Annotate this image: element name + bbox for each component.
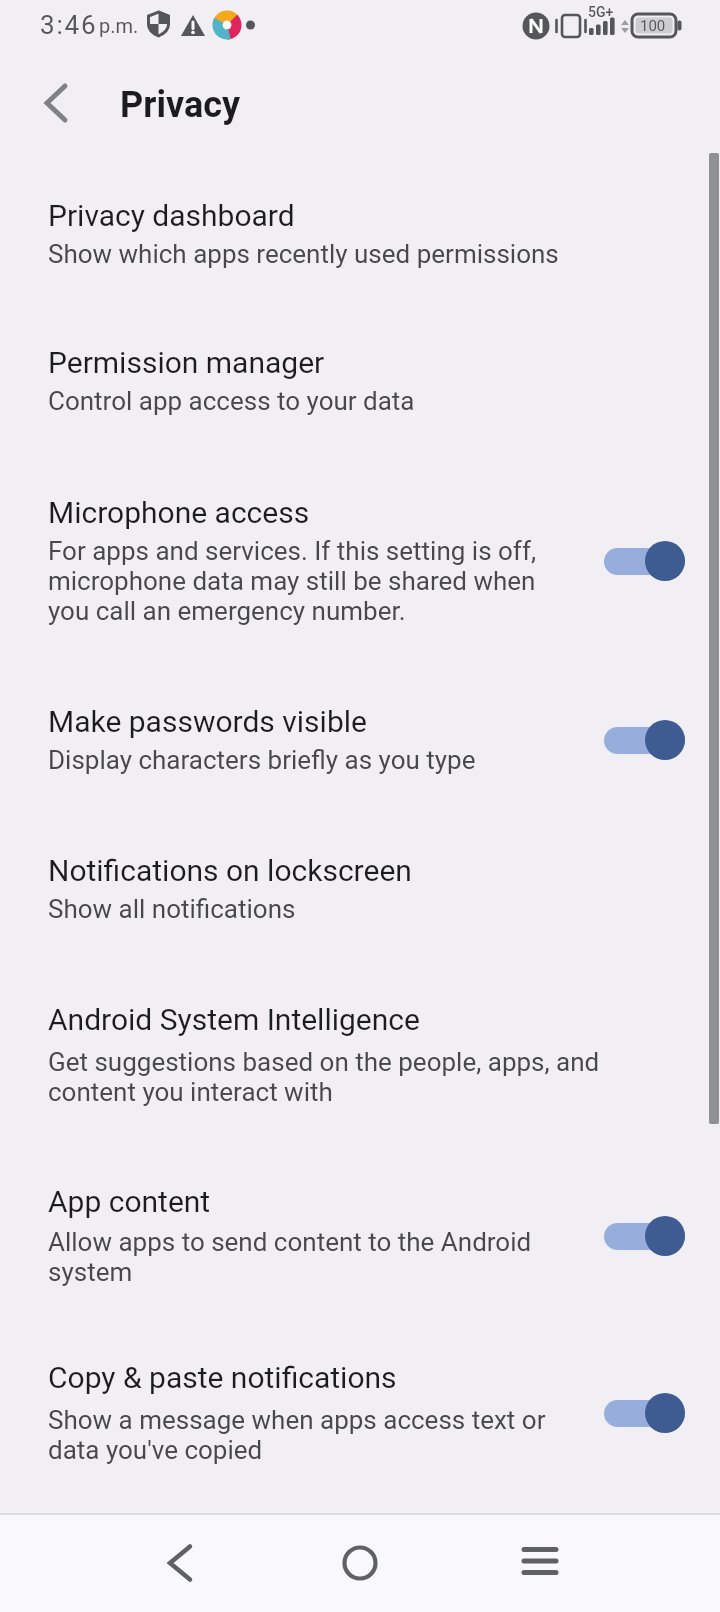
- button[interactable]: Microphone access: [0, 495, 685, 626]
- staticText: Display characters briefly as you type: [48, 745, 476, 775]
- staticText: 5G+: [588, 4, 614, 20]
- staticText: Get suggestions based on the people, app…: [48, 1047, 600, 1107]
- staticText: Notifications on lockscreen: [48, 853, 412, 888]
- staticText: Privacy: [120, 84, 241, 126]
- staticText: Android System Intelligence: [48, 1002, 420, 1037]
- button[interactable]: Permission manager: [0, 345, 685, 416]
- button[interactable]: [330, 1533, 390, 1593]
- staticText: p.m.: [99, 14, 139, 37]
- staticText: Show all notifications: [48, 894, 296, 924]
- button[interactable]: [150, 1533, 210, 1593]
- staticText: Show a message when apps access text or …: [48, 1405, 546, 1465]
- button[interactable]: [604, 541, 685, 581]
- staticText: For apps and services. If this setting i…: [48, 536, 537, 626]
- button[interactable]: [32, 79, 80, 127]
- staticText: Privacy dashboard: [48, 198, 295, 233]
- staticText: 3:46: [40, 10, 98, 40]
- button[interactable]: Android System Intelligence: [0, 1002, 685, 1107]
- button[interactable]: [604, 1393, 685, 1433]
- staticText: Make passwords visible: [48, 704, 367, 739]
- button[interactable]: [510, 1533, 570, 1593]
- button[interactable]: Copy & paste notifications: [0, 1360, 685, 1465]
- button[interactable]: Make passwords visible: [0, 704, 685, 775]
- button[interactable]: Privacy dashboard: [0, 198, 685, 269]
- button[interactable]: App content: [0, 1184, 685, 1287]
- staticText: Show which apps recently used permission…: [48, 239, 559, 269]
- staticText: Allow apps to send content to the Androi…: [48, 1227, 532, 1287]
- staticText: Copy & paste notifications: [48, 1360, 397, 1395]
- button[interactable]: [604, 1216, 685, 1256]
- staticText: 100: [640, 17, 666, 35]
- staticText: Microphone access: [48, 495, 310, 530]
- staticText: Control app access to your data: [48, 386, 415, 416]
- button[interactable]: [604, 720, 685, 760]
- staticText: Permission manager: [48, 345, 325, 380]
- button[interactable]: Notifications on lockscreen: [0, 853, 685, 924]
- staticText: App content: [48, 1184, 211, 1219]
